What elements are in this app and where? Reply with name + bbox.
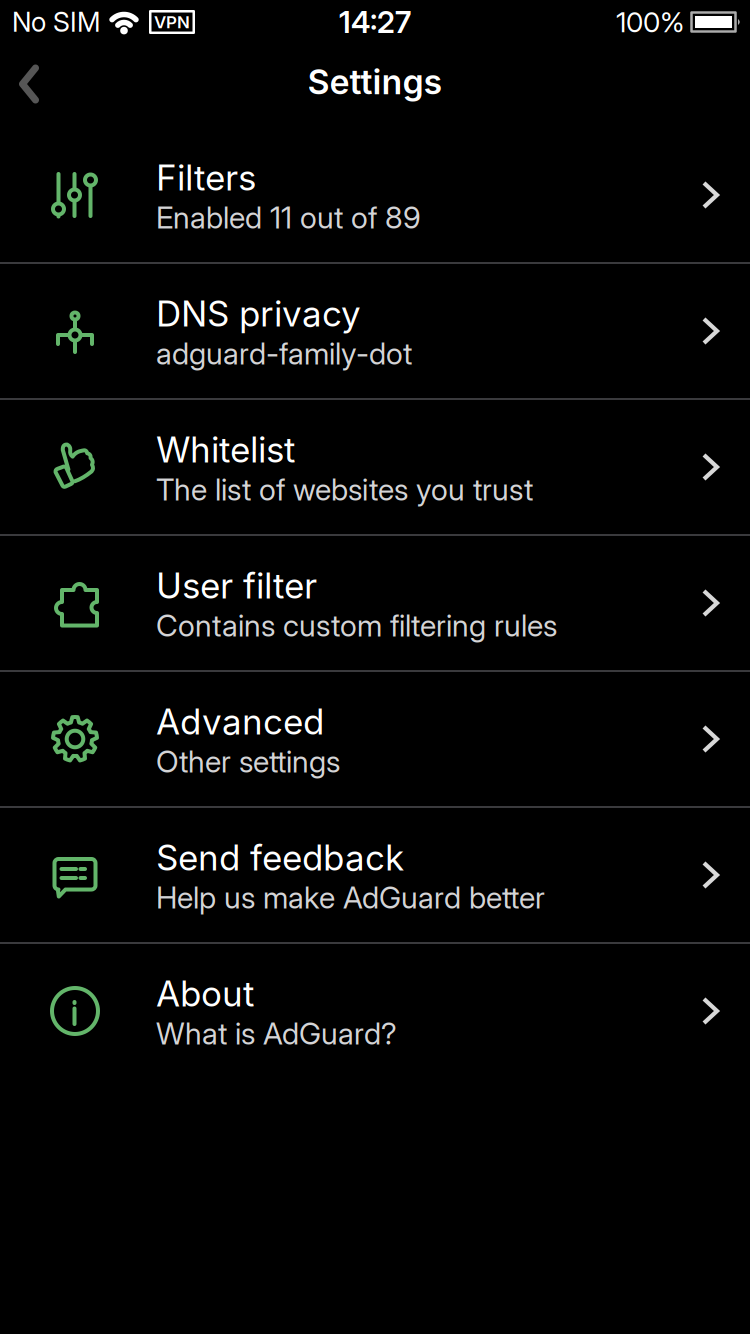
staticText: Contains custom filtering rules: [156, 608, 557, 643]
staticText: DNS privacy: [156, 293, 361, 335]
button[interactable]: Send feedback: [0, 808, 750, 942]
button[interactable]: Whitelist: [0, 400, 750, 534]
staticText: VPN: [154, 12, 190, 32]
button[interactable]: DNS privacy: [0, 264, 750, 398]
staticText: User filter: [156, 565, 317, 607]
staticText: 14:27: [339, 4, 411, 40]
button[interactable]: Filters: [0, 128, 750, 262]
button[interactable]: Advanced: [0, 672, 750, 806]
staticText: Other settings: [156, 744, 340, 779]
staticText: 100%: [616, 5, 684, 38]
staticText: No SIM: [12, 6, 100, 38]
staticText: Settings: [307, 62, 442, 102]
button[interactable]: Back: [0, 44, 41, 128]
staticText: The list of websites you trust: [156, 472, 533, 507]
button[interactable]: About: [0, 944, 750, 1078]
staticText: Send feedback: [156, 837, 404, 879]
staticText: About: [156, 973, 254, 1015]
staticText: Advanced: [156, 701, 324, 743]
staticText: Filters: [156, 157, 256, 199]
staticText: adguard-family-dot: [156, 336, 412, 371]
staticText: Whitelist: [156, 429, 295, 471]
staticText: What is AdGuard?: [156, 1016, 397, 1051]
staticText: Enabled 11 out of 89: [156, 200, 421, 235]
staticText: Help us make AdGuard better: [156, 880, 545, 915]
button[interactable]: User filter: [0, 536, 750, 670]
